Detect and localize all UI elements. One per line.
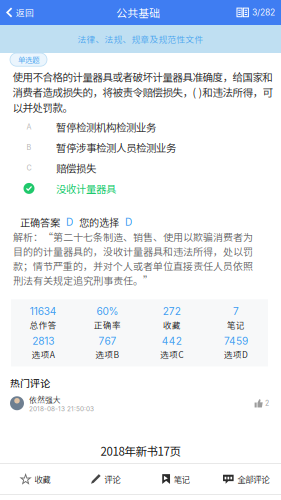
staticText: 60% xyxy=(96,305,118,318)
staticText: 公共基础 xyxy=(116,5,160,20)
staticText: 7459 xyxy=(224,335,248,347)
staticText: D xyxy=(119,216,132,228)
staticText: A xyxy=(26,123,31,131)
staticText: 7 xyxy=(233,305,239,318)
button[interactable]: 返回 xyxy=(0,0,40,25)
staticText: 选项B xyxy=(95,348,119,360)
staticText: 总作答 xyxy=(30,318,57,331)
staticText: 笔记 xyxy=(227,318,245,331)
staticText: 使用不合格的计量器具或者破坏计量器具准确度，给国家和消费者造成损失的，将被责令赔… xyxy=(12,69,272,115)
staticText: 11634 xyxy=(30,305,57,318)
button[interactable]: 笔记 xyxy=(140,468,211,490)
staticText: 2018-08-13 21:50:03 xyxy=(29,405,94,413)
staticText: 依然强大 xyxy=(29,394,61,405)
staticText: 评论 xyxy=(104,473,120,485)
staticText: 您的选择 xyxy=(79,215,119,229)
button[interactable]: 没收计量器具 xyxy=(0,178,281,199)
staticText: 单选题 xyxy=(18,54,39,65)
staticText: C xyxy=(26,164,31,172)
staticText: 442 xyxy=(162,335,182,347)
staticText: D xyxy=(60,216,79,228)
staticText: 2 xyxy=(265,399,269,407)
button[interactable]: 评论 xyxy=(70,468,140,490)
button[interactable]: B xyxy=(0,137,281,158)
staticText: 选项A xyxy=(32,348,55,360)
staticText: 赔偿损失 xyxy=(56,160,96,175)
staticText: 正确答案 xyxy=(20,215,60,229)
staticText: 热门评论 xyxy=(10,375,50,390)
staticText: 选项C xyxy=(160,348,183,360)
button[interactable]: 全部评论 xyxy=(211,468,281,490)
staticText: 收藏 xyxy=(163,318,181,331)
button[interactable]: 收藏 xyxy=(0,468,70,490)
staticText: 返回 xyxy=(16,6,34,19)
staticText: 2018年新书17页 xyxy=(100,442,180,459)
staticText: 选项D xyxy=(224,348,248,360)
staticText: 暂停涉事检测人员检测业务 xyxy=(56,140,176,155)
staticText: 3/282 xyxy=(252,7,275,18)
staticText: 解析：“第二十七条制造、销售、使用以欺骗消费者为目的的计量器具的，没收计量器具和… xyxy=(13,229,253,287)
button[interactable]: A xyxy=(0,117,281,137)
staticText: 272 xyxy=(163,305,181,318)
button[interactable]: Question 3 of 282 xyxy=(236,0,281,25)
staticText: 767 xyxy=(98,335,116,347)
staticText: 2813 xyxy=(32,335,54,347)
staticText: 笔记 xyxy=(174,473,190,485)
button[interactable]: C xyxy=(0,158,281,178)
staticText: 全部评论 xyxy=(237,473,269,485)
staticText: 暂停检测机构检测业务 xyxy=(56,119,156,134)
staticText: 正确率 xyxy=(94,318,121,331)
staticText: B xyxy=(26,143,31,152)
staticText: 收藏 xyxy=(34,473,50,485)
staticText: 没收计量器具 xyxy=(56,181,116,196)
staticText: 法律、法规、规章及规范性文件 xyxy=(77,33,203,45)
